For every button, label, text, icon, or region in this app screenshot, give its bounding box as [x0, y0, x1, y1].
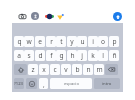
staticText: t — [60, 37, 63, 46]
button[interactable]: i — [88, 36, 98, 47]
button[interactable]: r — [46, 36, 56, 47]
staticText: e — [38, 37, 42, 46]
staticText: ñ — [112, 51, 117, 60]
staticText: n — [86, 65, 91, 74]
staticText: j — [81, 51, 83, 60]
button[interactable]: v — [61, 64, 71, 75]
staticText: o — [101, 37, 105, 46]
button[interactable]: n — [83, 64, 93, 75]
staticText: m — [96, 65, 103, 74]
staticText: p — [112, 37, 117, 46]
staticText: l — [102, 51, 104, 60]
button[interactable]: y — [67, 36, 77, 47]
button[interactable]: b — [72, 64, 82, 75]
button[interactable]: d — [35, 50, 45, 61]
button[interactable]: Send — [113, 12, 122, 21]
button[interactable]: l — [98, 50, 108, 61]
button[interactable]: x — [39, 64, 49, 75]
button[interactable]: m — [94, 64, 104, 75]
button[interactable]: k — [88, 50, 98, 61]
button[interactable]: u — [77, 36, 87, 47]
staticText: c — [53, 65, 57, 74]
button[interactable]: Gallery — [31, 12, 39, 20]
staticText: w — [26, 37, 32, 46]
button[interactable]: GIF — [55, 12, 64, 21]
button[interactable]: ?123 — [14, 78, 24, 89]
button[interactable]: intro — [94, 78, 120, 89]
staticText: g — [59, 51, 64, 60]
staticText: intro — [102, 81, 112, 87]
staticText: q — [17, 37, 22, 46]
button[interactable]: z — [28, 64, 38, 75]
button[interactable]: s — [24, 50, 34, 61]
staticText: s — [27, 51, 31, 60]
button[interactable]: ñ — [109, 50, 119, 61]
staticText: d — [38, 51, 43, 60]
button[interactable]: t — [56, 36, 66, 47]
button[interactable]: g — [56, 50, 66, 61]
button[interactable]: Stickers — [44, 11, 54, 21]
button[interactable]: Shift — [14, 64, 27, 75]
staticText: a — [17, 51, 21, 60]
button[interactable]: espacio — [50, 78, 92, 89]
staticText: f — [50, 51, 53, 60]
button[interactable]: Emoji — [26, 78, 37, 89]
button[interactable]: q — [14, 36, 24, 47]
button[interactable]: a — [14, 50, 24, 61]
staticText: b — [75, 65, 80, 74]
staticText: v — [64, 65, 68, 74]
staticText: k — [91, 51, 95, 60]
staticText: h — [70, 51, 75, 60]
button[interactable]: Backspace — [105, 64, 118, 75]
button[interactable]: Camera — [18, 12, 27, 21]
button[interactable]: p — [109, 36, 119, 47]
staticText: r — [50, 37, 53, 46]
staticText: y — [70, 37, 74, 46]
button[interactable]: e — [35, 36, 45, 47]
button[interactable]: c — [50, 64, 60, 75]
button[interactable]: j — [77, 50, 87, 61]
staticText: ?123 — [14, 81, 24, 87]
staticText: z — [31, 65, 35, 74]
button[interactable]: o — [98, 36, 108, 47]
staticText: u — [80, 37, 85, 46]
staticText: i — [92, 37, 94, 46]
staticText: espacio — [64, 81, 79, 87]
button[interactable]: , — [39, 78, 48, 89]
button[interactable]: f — [46, 50, 56, 61]
button[interactable]: h — [67, 50, 77, 61]
button[interactable]: w — [24, 36, 34, 47]
staticText: , — [43, 80, 45, 88]
staticText: x — [42, 65, 46, 74]
